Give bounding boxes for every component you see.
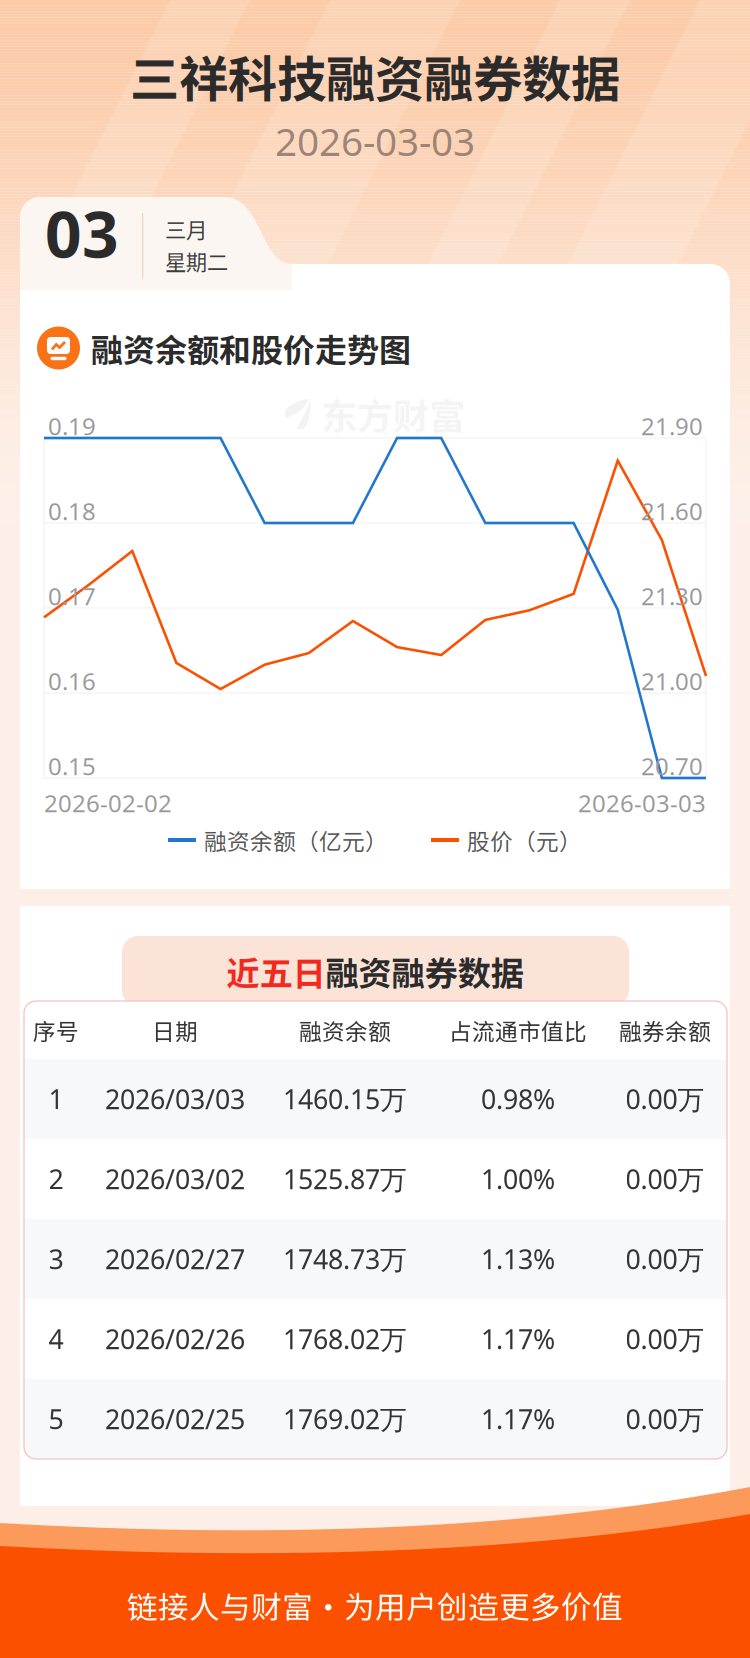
staticText: 2026/02/25	[105, 1401, 245, 1437]
staticText: 21.30	[641, 580, 703, 612]
staticText: 序号	[33, 1014, 79, 1046]
staticText: 03	[45, 189, 119, 277]
staticText: 0.00万	[625, 1321, 704, 1357]
staticText: 0.00万	[625, 1401, 704, 1437]
staticText: 2	[48, 1161, 63, 1197]
staticText: 股价（元）	[467, 824, 582, 856]
staticText: 1748.73万	[283, 1241, 407, 1277]
staticText: 三祥科技融资融券数据	[130, 40, 620, 112]
staticText: 三月	[165, 214, 207, 244]
staticText: 0.17	[48, 580, 96, 612]
staticText: 1768.02万	[283, 1321, 407, 1357]
staticText: 融资余额（亿元）	[204, 824, 388, 856]
staticText: 东方财富	[321, 388, 465, 440]
staticText: 1	[48, 1081, 63, 1117]
staticText: 0.19	[48, 410, 96, 442]
staticText: 近五日	[226, 947, 325, 995]
staticText: 0.15	[48, 750, 96, 782]
staticText: 0.16	[48, 665, 96, 697]
staticText: 2026/02/27	[105, 1241, 245, 1277]
staticText: 2026/03/03	[105, 1081, 245, 1117]
staticText: 0.98%	[481, 1081, 555, 1117]
staticText: 2026-03-03	[275, 115, 475, 167]
staticText: 21.90	[641, 410, 703, 442]
staticText: 融券余额	[619, 1014, 711, 1046]
staticText: 2026-02-02	[44, 787, 172, 819]
staticText: 融资余额和股价走势图	[91, 325, 411, 371]
staticText: 0.00万	[625, 1161, 704, 1197]
staticText: 1460.15万	[283, 1081, 407, 1117]
staticText: 0.00万	[625, 1241, 704, 1277]
staticText: 5	[48, 1401, 63, 1437]
staticText: 4	[48, 1321, 63, 1357]
staticText: 0.18	[48, 495, 96, 527]
staticText: 3	[48, 1241, 63, 1277]
staticText: 融资余额	[299, 1014, 391, 1046]
staticText: 20.70	[641, 750, 703, 782]
staticText: 21.00	[641, 665, 703, 697]
staticText: 链接人与财富·为用户创造更多价值	[127, 1583, 623, 1627]
staticText: 21.60	[641, 495, 703, 527]
staticText: 2026/02/26	[105, 1321, 245, 1357]
staticText: 日期	[152, 1014, 198, 1046]
staticText: 1.13%	[481, 1241, 555, 1277]
staticText: 0.00万	[625, 1081, 704, 1117]
staticText: 2026-03-03	[578, 787, 706, 819]
staticText: 1769.02万	[283, 1401, 407, 1437]
staticText: 占流通市值比	[449, 1014, 587, 1046]
staticText: 1.00%	[481, 1161, 555, 1197]
staticText: 星期二	[165, 246, 228, 276]
staticText: 2026/03/02	[105, 1161, 245, 1197]
staticText: 融资融券数据	[325, 947, 523, 995]
staticText: 1525.87万	[283, 1161, 407, 1197]
staticText: 1.17%	[481, 1321, 555, 1357]
staticText: 1.17%	[481, 1401, 555, 1437]
